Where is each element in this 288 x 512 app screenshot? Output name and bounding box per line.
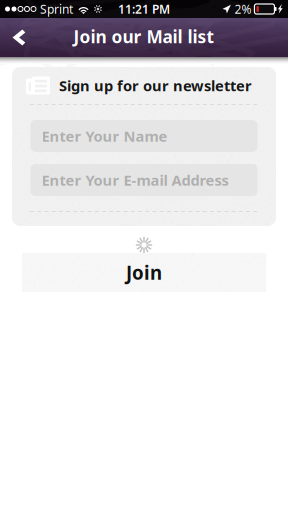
button[interactable]: Enter Your Name	[30, 120, 257, 152]
staticText: Enter Your E-mail Address	[41, 170, 228, 190]
button[interactable]: Back	[0, 18, 38, 57]
staticText: Sign up for our newsletter	[59, 76, 252, 95]
staticText: 11:21 PM	[118, 1, 170, 17]
staticText: Join	[126, 260, 162, 285]
staticText: Join our Mail list	[73, 25, 214, 48]
button[interactable]: Join	[22, 253, 266, 292]
button[interactable]: Enter Your E-mail Address	[30, 164, 257, 196]
staticText: Enter Your Name	[41, 126, 167, 146]
staticText: Sprint	[40, 1, 73, 17]
staticText: 2%	[234, 1, 251, 17]
